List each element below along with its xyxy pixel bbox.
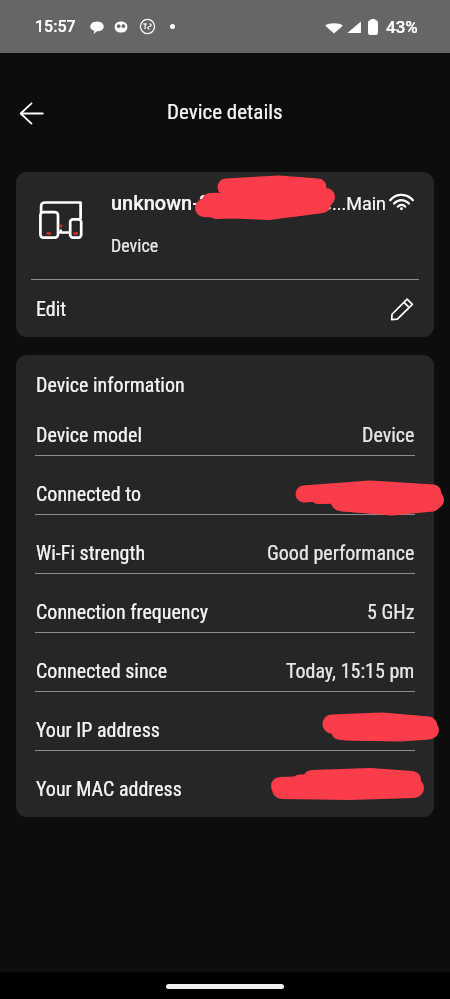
staticText: Your MAC address: [36, 777, 182, 800]
staticText: 15:57: [35, 17, 76, 36]
button[interactable]: Your IP address: [16, 709, 434, 750]
staticText: Device information: [36, 373, 185, 396]
staticText: Connected since: [36, 659, 168, 682]
staticText: Your IP address: [36, 718, 160, 741]
staticText: Connection frequency: [36, 600, 209, 623]
button[interactable]: Device model: [16, 414, 434, 455]
button[interactable]: Connected to: [16, 473, 434, 514]
button[interactable]: Connected since: [16, 650, 434, 691]
staticText: Edit: [36, 297, 67, 320]
staticText: Connected to: [36, 482, 141, 505]
button[interactable]: Back: [9, 91, 53, 135]
staticText: 5 GHz: [367, 600, 415, 623]
button[interactable]: Edit: [16, 280, 434, 337]
staticText: Good performance: [267, 541, 415, 564]
staticText: Device details: [167, 100, 283, 125]
staticText: Device: [111, 235, 159, 256]
staticText: 43%: [386, 17, 418, 37]
staticText: Device model: [36, 423, 142, 446]
button[interactable]: Connection frequency: [16, 591, 434, 632]
staticText: unknown-38:4b:a: [111, 191, 266, 214]
staticText: Device: [362, 423, 415, 446]
staticText: ...Main: [332, 193, 387, 214]
staticText: 3:d3:ce: [266, 191, 332, 214]
staticText: Today, 15:15 pm: [286, 659, 415, 682]
button[interactable]: Wi-Fi strength: [16, 532, 434, 573]
staticText: Wi-Fi strength: [36, 541, 146, 564]
button[interactable]: Your MAC address: [16, 768, 434, 809]
